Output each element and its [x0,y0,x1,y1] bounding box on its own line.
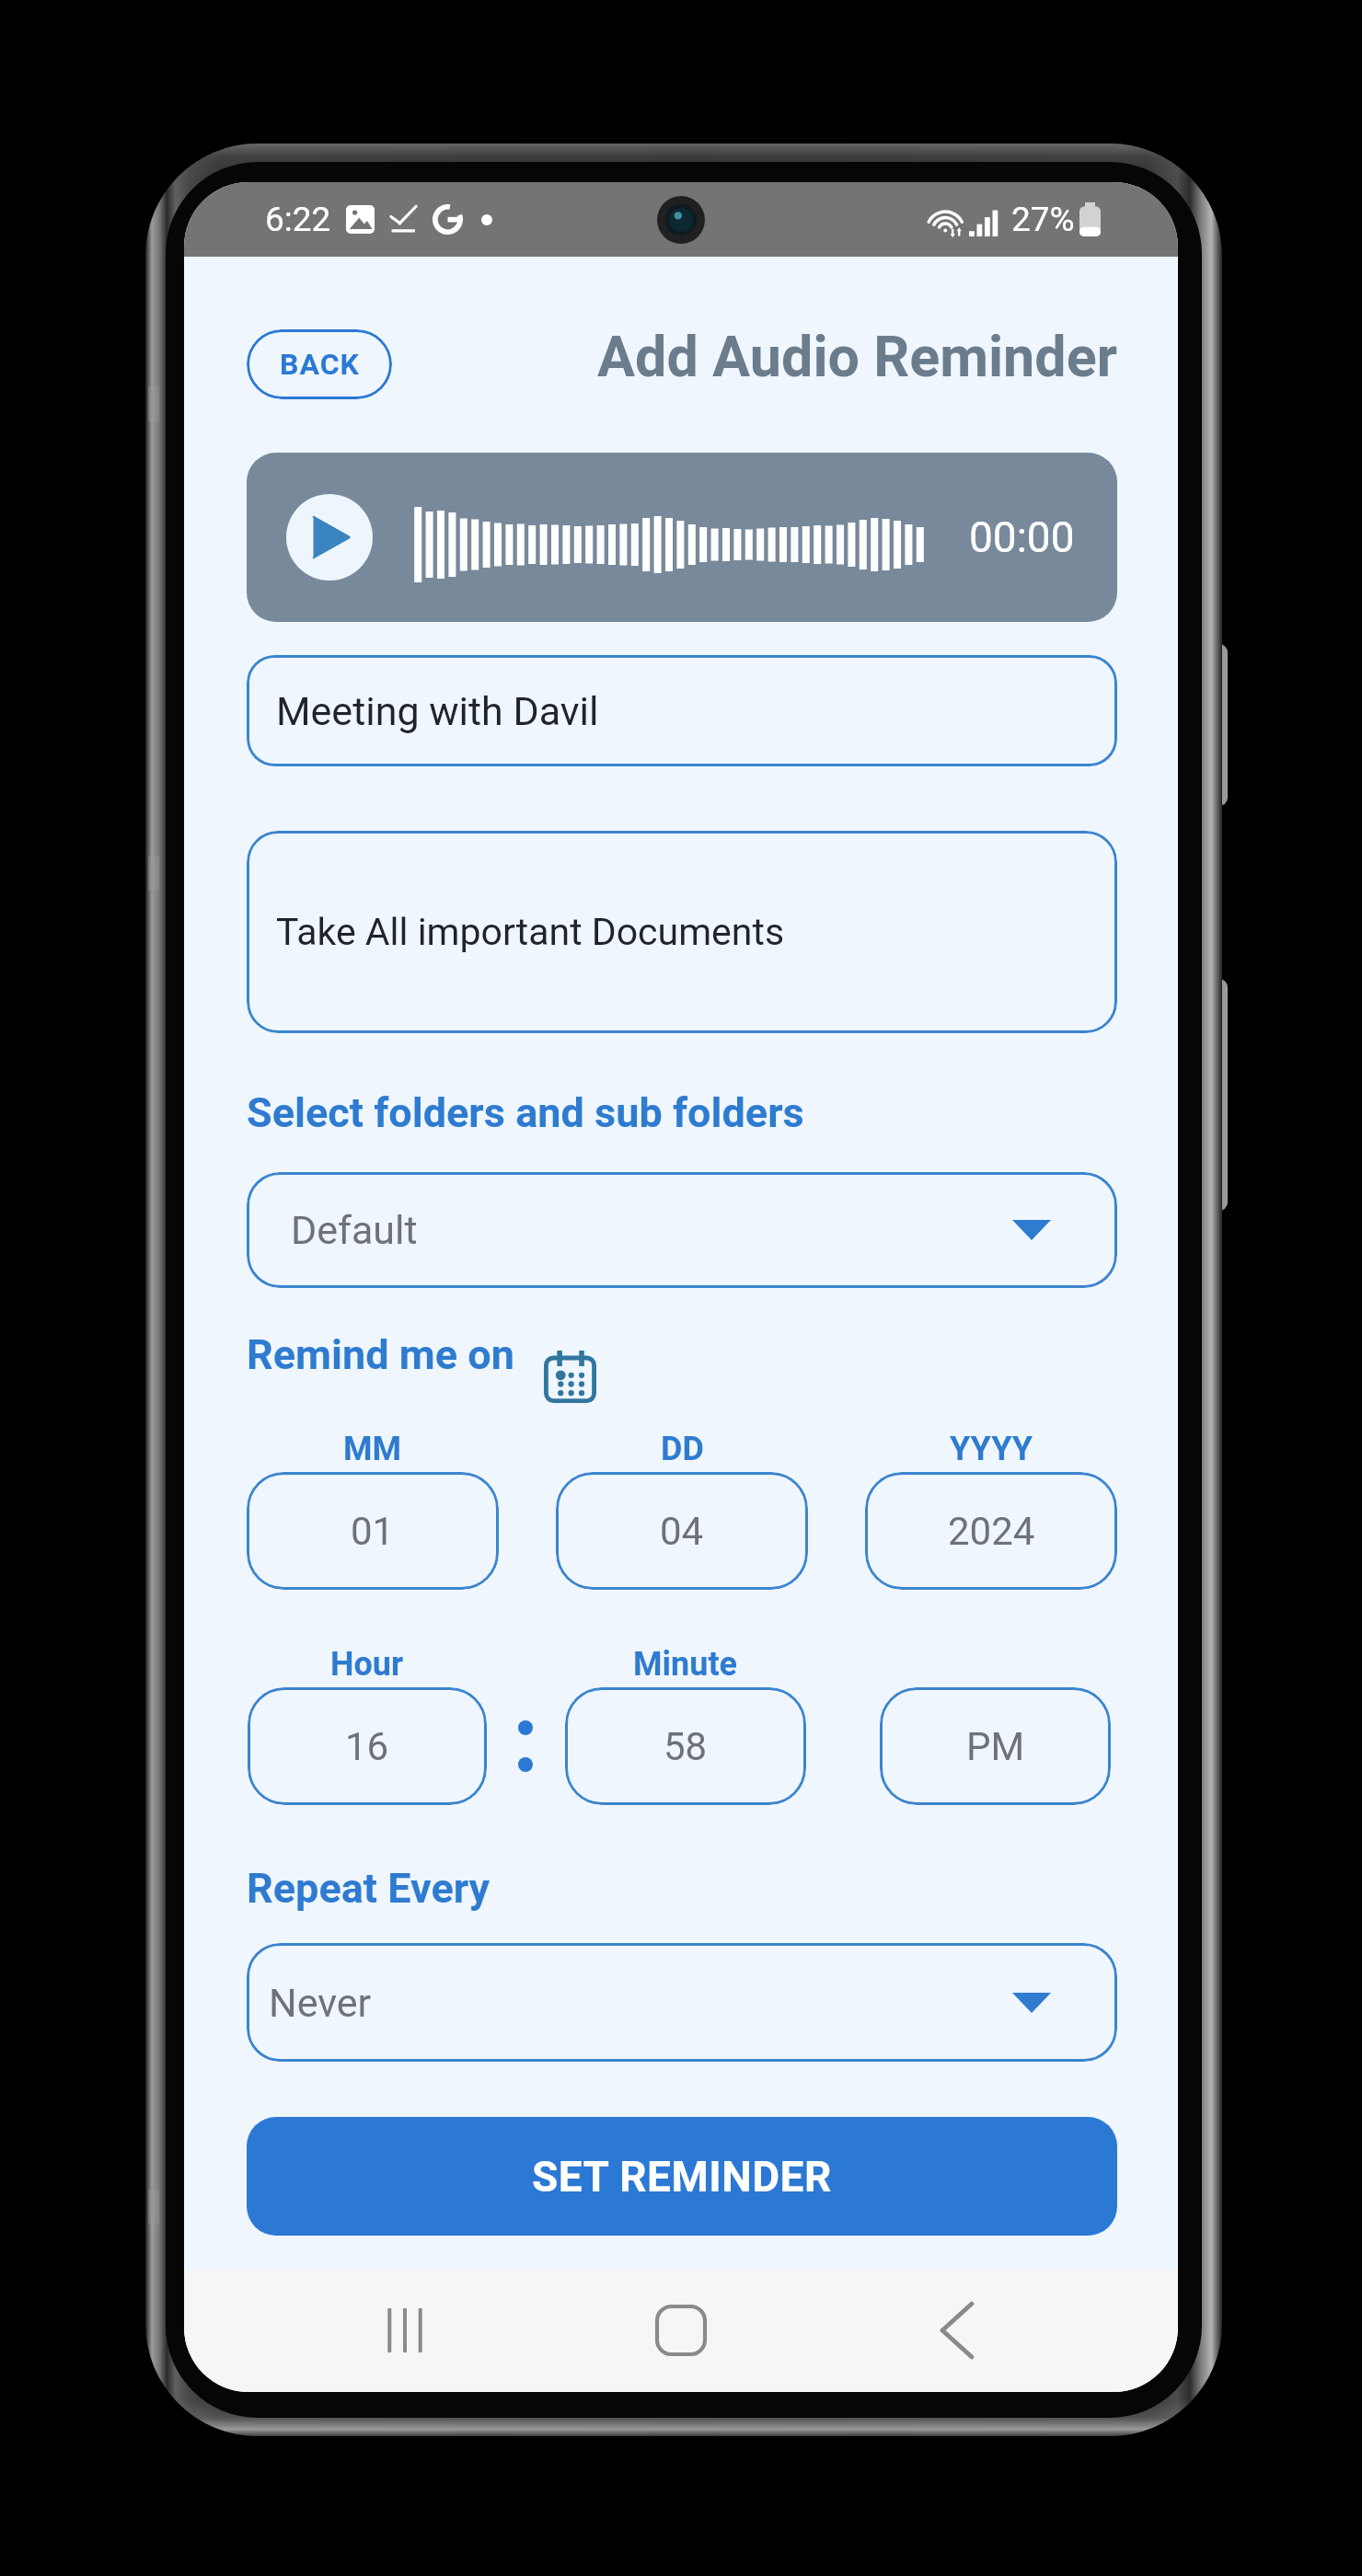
staticText: 00:00 [969,512,1075,562]
staticText: 01 [351,1509,395,1554]
button[interactable]: Never [247,1943,1117,2062]
staticText: Never [269,1980,372,2026]
staticText: Select folders and sub folders [247,1088,804,1137]
staticText: Hour [330,1645,404,1684]
staticText: 27% [1011,200,1075,239]
staticText: Default [291,1207,418,1253]
staticText: Add Audio Reminder [597,324,1117,389]
button[interactable]: PM [880,1687,1111,1805]
button[interactable]: Pick a date [543,1350,596,1403]
staticText: 16 [345,1724,389,1769]
staticText: 58 [664,1724,708,1769]
button[interactable]: Default [247,1172,1117,1288]
button[interactable]: Take All important Documents [247,831,1117,1033]
button[interactable]: Back [902,2275,1012,2386]
button[interactable]: BACK [247,329,392,399]
staticText: SET REMINDER [532,2152,832,2202]
staticText: 6:22 [265,200,331,239]
staticText: Minute [633,1645,738,1684]
staticText: BACK [280,347,360,382]
staticText: DD [661,1430,704,1468]
button[interactable]: 16 [248,1687,487,1805]
button[interactable]: Recent apps [350,2275,460,2386]
staticText: Meeting with Davil [276,688,599,734]
staticText: 2024 [948,1509,1035,1554]
staticText: 04 [660,1509,704,1554]
button[interactable]: Meeting with Davil [247,655,1117,766]
staticText: Repeat Every [247,1864,491,1913]
staticText: Take All important Documents [276,910,785,954]
staticText: PM [966,1724,1025,1769]
staticText: YYYY [950,1430,1033,1468]
button[interactable]: Home [626,2275,736,2386]
button[interactable]: SET REMINDER [247,2117,1117,2236]
button[interactable]: Play recording [286,494,373,581]
button[interactable]: Play recording [247,453,1117,622]
staticText: Remind me on [247,1330,514,1379]
button[interactable]: 04 [556,1472,808,1590]
button[interactable]: 01 [247,1472,499,1590]
button[interactable]: 2024 [865,1472,1117,1590]
staticText: MM [343,1430,402,1468]
button[interactable]: 58 [565,1687,806,1805]
